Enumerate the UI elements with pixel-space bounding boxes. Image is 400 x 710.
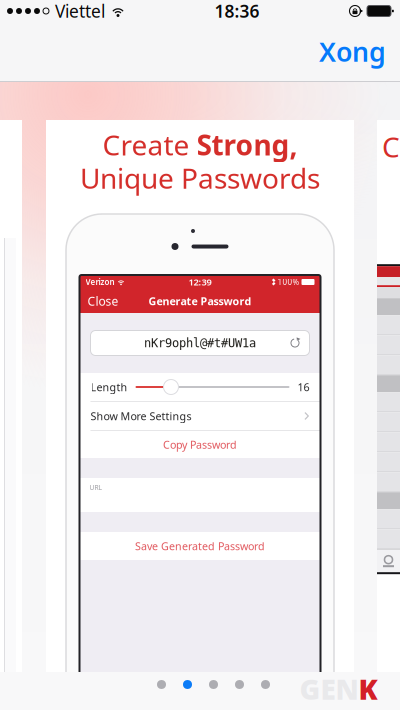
staticText: Close [87, 293, 118, 309]
staticText: Create Strong, [102, 126, 297, 163]
staticText: Save Generated Password [135, 539, 265, 553]
staticText: Unique Passwords [80, 159, 320, 196]
staticText: Copy Password [163, 437, 237, 452]
staticText: GEN [299, 670, 358, 708]
staticText: 18:36 [214, 0, 259, 22]
staticText: Show More Settings [90, 409, 191, 423]
staticText: Xong [319, 34, 386, 69]
button[interactable]: Xong [305, 24, 400, 79]
staticText: K [358, 670, 377, 708]
staticText: 100% [277, 277, 299, 287]
staticText: C [382, 128, 400, 165]
staticText: 16 [297, 380, 309, 394]
staticText: Viettel [55, 0, 105, 22]
staticText: nKr9ophl@#t#UW1a [144, 336, 256, 350]
staticText: URL [89, 483, 101, 492]
staticText: Verizon [85, 277, 114, 287]
staticText: 12:39 [188, 276, 211, 288]
staticText: Length [90, 380, 127, 394]
staticText: Generate Password [148, 294, 251, 308]
